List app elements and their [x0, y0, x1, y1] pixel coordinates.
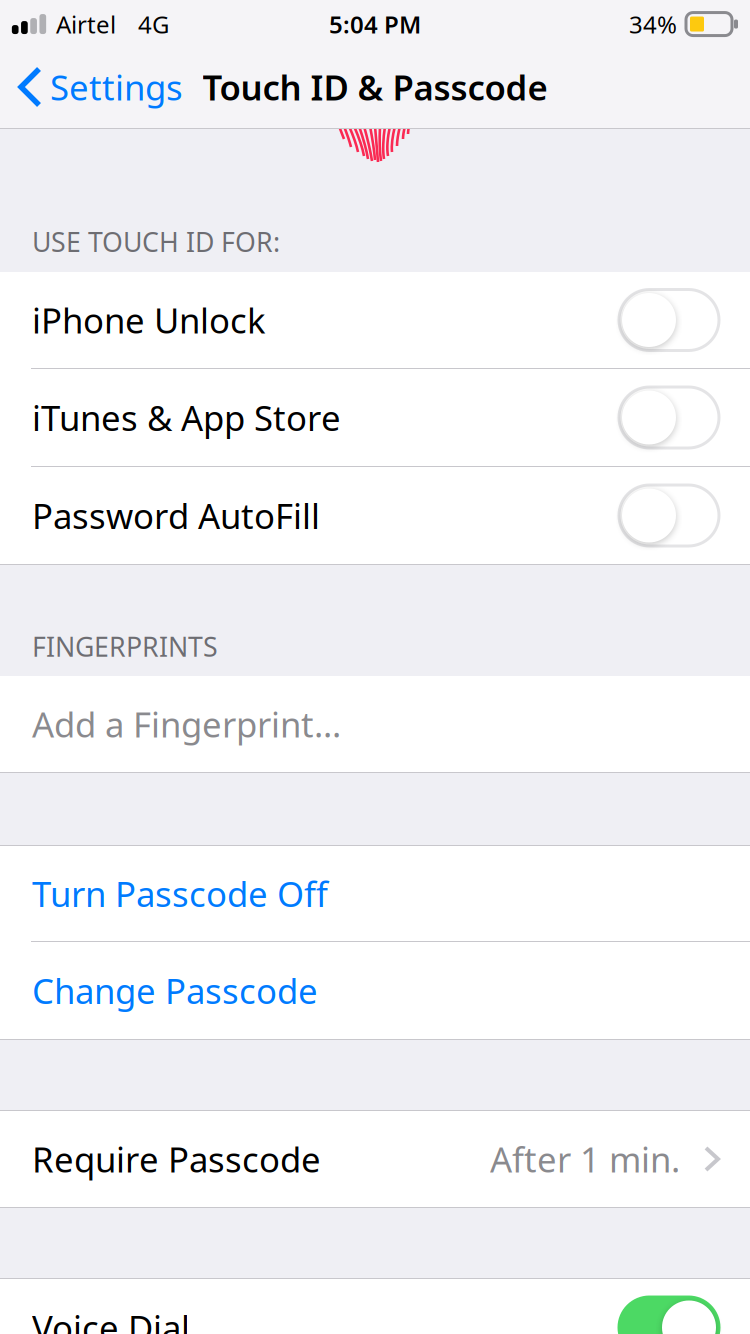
staticText: Turn Passcode Off	[32, 870, 328, 916]
staticText: 4G	[138, 8, 169, 40]
staticText: FINGERPRINTS	[32, 629, 218, 664]
staticText: 5:04 PM	[329, 8, 421, 40]
staticText: 34%	[629, 8, 677, 40]
staticText: iTunes & App Store	[32, 394, 341, 440]
button[interactable]: iTunes & App Store	[0, 369, 750, 466]
button[interactable]: iPhone Unlock	[0, 272, 750, 368]
button[interactable]: Add a Fingerprint...	[0, 676, 750, 772]
staticText: Add a Fingerprint...	[32, 701, 341, 747]
button[interactable]: Turn Passcode Off	[0, 846, 750, 941]
staticText: iPhone Unlock	[32, 297, 266, 343]
staticText: After 1 min.	[490, 1136, 680, 1182]
button[interactable]: Password AutoFill	[0, 467, 750, 564]
button[interactable]: Require Passcode	[0, 1111, 750, 1207]
button[interactable]: Settings	[0, 54, 183, 120]
button[interactable]: Change Passcode	[0, 942, 750, 1039]
staticText: Password AutoFill	[32, 492, 320, 538]
staticText: Settings	[50, 64, 183, 110]
staticText: Airtel	[56, 8, 116, 40]
staticText: Require Passcode	[32, 1136, 321, 1182]
staticText: Voice Dial	[32, 1304, 190, 1334]
staticText: Touch ID & Passcode	[202, 64, 547, 110]
staticText: USE TOUCH ID FOR:	[32, 224, 280, 259]
button[interactable]: Voice Dial	[0, 1279, 750, 1334]
staticText: Change Passcode	[32, 967, 318, 1013]
